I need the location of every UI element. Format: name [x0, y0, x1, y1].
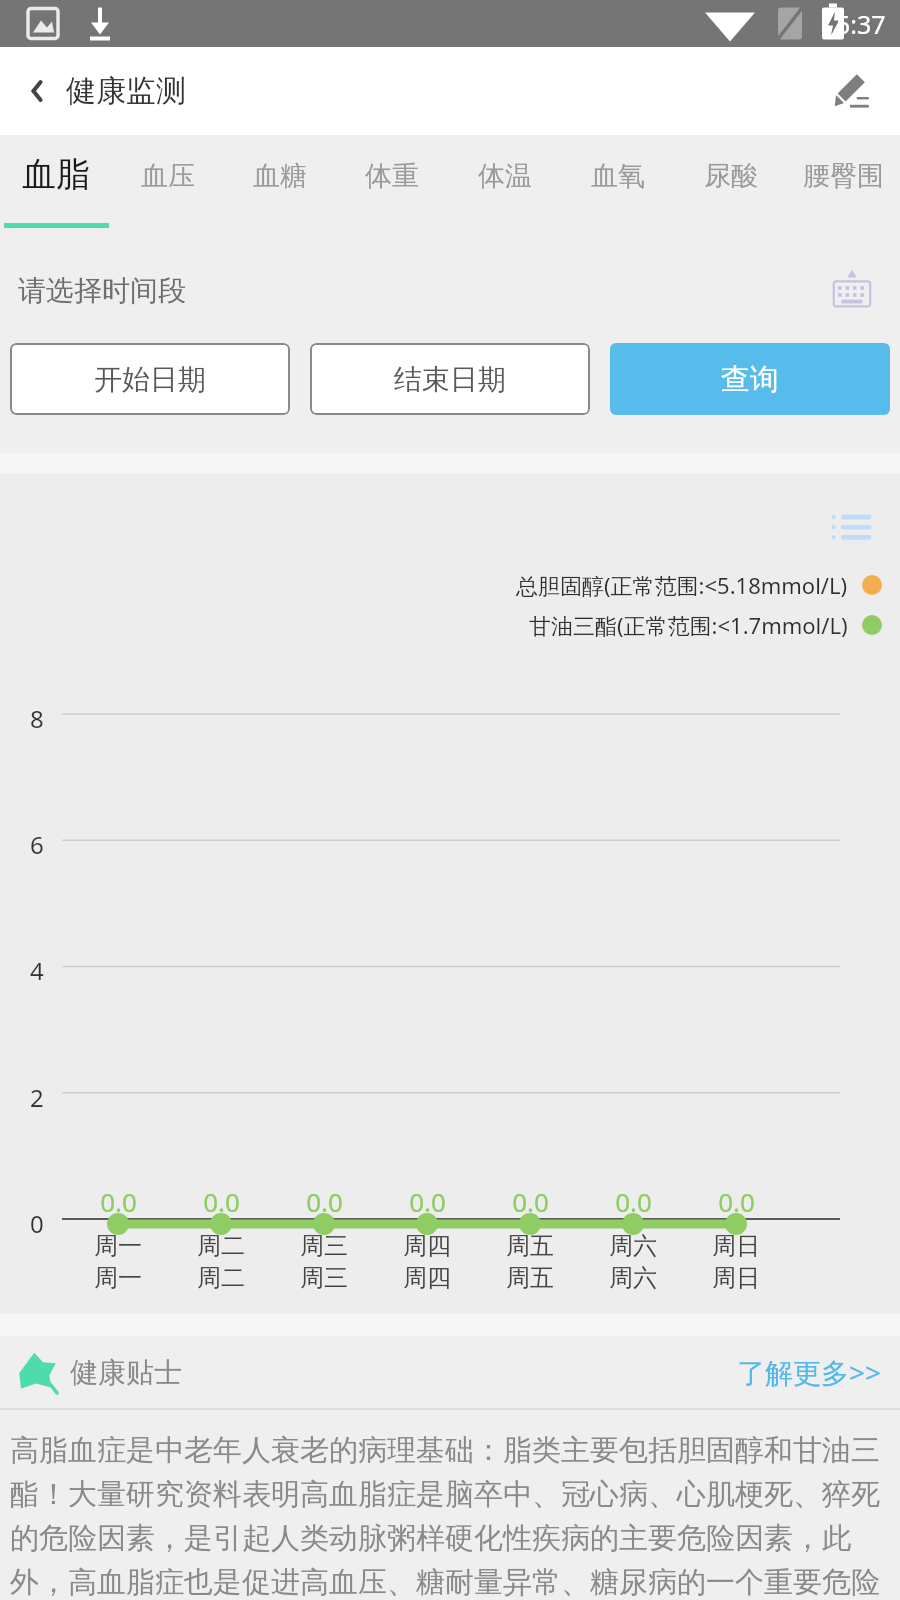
staticText: 周一 — [94, 1263, 142, 1293]
staticText: 周日 — [712, 1231, 760, 1261]
staticText: 周三 — [300, 1231, 348, 1261]
staticText: 周六 — [609, 1231, 657, 1261]
button[interactable]: 血压 — [112, 135, 224, 238]
button[interactable]: 查询 — [610, 343, 890, 415]
button[interactable]: 血糖 — [224, 135, 336, 238]
staticText: 周日 — [712, 1263, 760, 1293]
button[interactable]: 健康监测 — [0, 72, 196, 110]
button[interactable]: List view — [824, 502, 880, 558]
button[interactable]: 尿酸 — [674, 135, 787, 238]
staticText: 周四 — [403, 1263, 451, 1293]
button[interactable]: 了解更多>> — [719, 1343, 900, 1401]
staticText: 0.0 — [100, 1184, 137, 1219]
staticText: 周二 — [197, 1231, 245, 1261]
staticText: 2 — [30, 1081, 44, 1114]
staticText: 体温 — [478, 159, 532, 193]
staticText: 开始日期 — [94, 362, 206, 397]
staticText: 体重 — [365, 159, 419, 193]
staticText: 健康监测 — [66, 72, 186, 110]
staticText: 周四 — [403, 1231, 451, 1261]
button[interactable]: 开始日期 — [10, 343, 290, 415]
staticText: 血压 — [141, 159, 195, 193]
staticText: 高脂血症是中老年人衰老的病理基础：脂类主要包括胆固醇和甘油三酯！大量研究资料表明… — [10, 1432, 890, 1600]
staticText: 0 — [30, 1207, 44, 1240]
staticText: 5:37 — [836, 7, 886, 41]
button[interactable]: 结束日期 — [310, 343, 590, 415]
staticText: 周六 — [609, 1263, 657, 1293]
staticText: 健康贴士 — [70, 1355, 182, 1390]
staticText: 4 — [30, 954, 44, 987]
staticText: 血糖 — [253, 159, 307, 193]
staticText: 腰臀围 — [803, 159, 884, 193]
button[interactable]: 体温 — [448, 135, 561, 238]
staticText: 总胆固醇(正常范围:<5.18mmol/L) — [516, 570, 848, 600]
staticText: 周五 — [506, 1231, 554, 1261]
button[interactable]: 血脂 — [0, 135, 112, 238]
staticText: 8 — [30, 702, 44, 735]
staticText: 0.0 — [615, 1184, 652, 1219]
staticText: 尿酸 — [704, 159, 758, 193]
staticText: 0.0 — [306, 1184, 343, 1219]
staticText: 血脂 — [22, 153, 90, 196]
staticText: 0.0 — [409, 1184, 446, 1219]
staticText: 周一 — [94, 1231, 142, 1261]
button[interactable]: 血氧 — [561, 135, 674, 238]
staticText: 结束日期 — [394, 362, 506, 397]
button[interactable]: Keyboard — [824, 263, 880, 319]
staticText: 血氧 — [591, 159, 645, 193]
staticText: 周五 — [506, 1263, 554, 1293]
staticText: 0.0 — [203, 1184, 240, 1219]
staticText: 0.0 — [512, 1184, 549, 1219]
staticText: 查询 — [721, 361, 779, 398]
staticText: 6 — [30, 828, 44, 861]
staticText: 0.0 — [718, 1184, 755, 1219]
button[interactable]: Edit — [824, 63, 880, 119]
staticText: 请选择时间段 — [18, 273, 186, 308]
button[interactable]: 体重 — [336, 135, 448, 238]
staticText: 了解更多>> — [737, 1353, 882, 1391]
button[interactable]: 腰臀围 — [787, 135, 900, 238]
staticText: 周三 — [300, 1263, 348, 1293]
staticText: 甘油三酯(正常范围:<1.7mmol/L) — [529, 610, 848, 640]
staticText: 周二 — [197, 1263, 245, 1293]
